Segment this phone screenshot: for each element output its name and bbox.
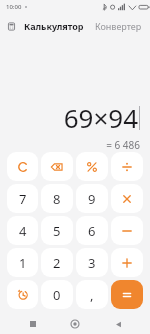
button[interactable]: Divide: [111, 152, 143, 181]
button[interactable]: 4: [7, 216, 38, 245]
staticText: 5: [53, 222, 61, 240]
other: Calculator icon: [7, 22, 16, 31]
button[interactable]: 5: [41, 216, 73, 245]
button[interactable]: 7: [7, 184, 38, 213]
staticText: 69×94: [63, 100, 138, 135]
staticText: 0: [53, 286, 61, 304]
button[interactable]: 6: [76, 216, 108, 245]
staticText: 3: [88, 254, 96, 272]
staticText: 4: [19, 222, 27, 240]
staticText: 1: [19, 254, 27, 272]
button[interactable]: Plus: [111, 248, 143, 277]
button[interactable]: Калькулятор: [22, 18, 86, 34]
staticText: 10:00: [6, 3, 22, 11]
button[interactable]: 0: [41, 280, 73, 309]
button[interactable]: ,: [76, 280, 108, 309]
button[interactable]: Multiply: [111, 184, 143, 213]
button[interactable]: Equals: [111, 280, 143, 309]
button[interactable]: History: [7, 280, 38, 309]
button[interactable]: 8: [41, 184, 73, 213]
button[interactable]: Clear: [7, 152, 38, 181]
staticText: Конвертер: [95, 20, 142, 32]
staticText: Калькулятор: [24, 20, 84, 32]
button[interactable]: Back: [108, 314, 128, 334]
staticText: 9: [88, 190, 96, 208]
button[interactable]: Backspace: [41, 152, 73, 181]
button[interactable]: Minus: [111, 216, 143, 245]
staticText: = 6 486: [106, 138, 140, 152]
button[interactable]: 2: [41, 248, 73, 277]
staticText: 8: [53, 190, 61, 208]
staticText: 7: [19, 190, 27, 208]
staticText: 2: [53, 254, 61, 272]
staticText: ,: [90, 286, 94, 304]
button[interactable]: Percent: [76, 152, 108, 181]
button[interactable]: 3: [76, 248, 108, 277]
button[interactable]: 9: [76, 184, 108, 213]
button[interactable]: Recent apps: [23, 314, 43, 334]
button[interactable]: Home: [65, 314, 85, 334]
button[interactable]: Конвертер: [93, 18, 144, 34]
button[interactable]: 1: [7, 248, 38, 277]
staticText: 6: [88, 222, 96, 240]
